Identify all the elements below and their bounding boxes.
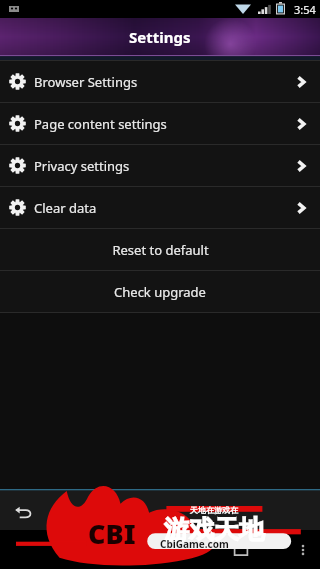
button[interactable]: Home [135,533,169,567]
staticText: Check upgrade [114,283,206,301]
button[interactable]: Back [46,533,80,567]
staticText: Reset to default [112,241,209,259]
button[interactable]: Menu [292,539,314,561]
staticText: CBI [88,515,136,552]
staticText: Clear data [34,199,97,217]
button[interactable]: Reset to default [0,229,320,270]
staticText: 天地在游戏在 [190,505,238,515]
staticText: 游戏天地 [164,514,264,545]
staticText: Settings [129,27,191,47]
button[interactable]: Clear data [0,187,320,228]
staticText: Privacy settings [34,157,130,175]
button[interactable]: Recent apps [224,533,258,567]
staticText: CbiGame.com [160,537,229,551]
staticText: Page content settings [34,115,167,133]
button[interactable]: Privacy settings [0,145,320,186]
button[interactable]: Page content settings [0,103,320,144]
button[interactable]: Back [8,495,38,525]
staticText: 3:54 [294,2,316,17]
button[interactable]: Browser Settings [0,61,320,102]
staticText: Browser Settings [34,73,138,91]
button[interactable]: Check upgrade [0,271,320,312]
